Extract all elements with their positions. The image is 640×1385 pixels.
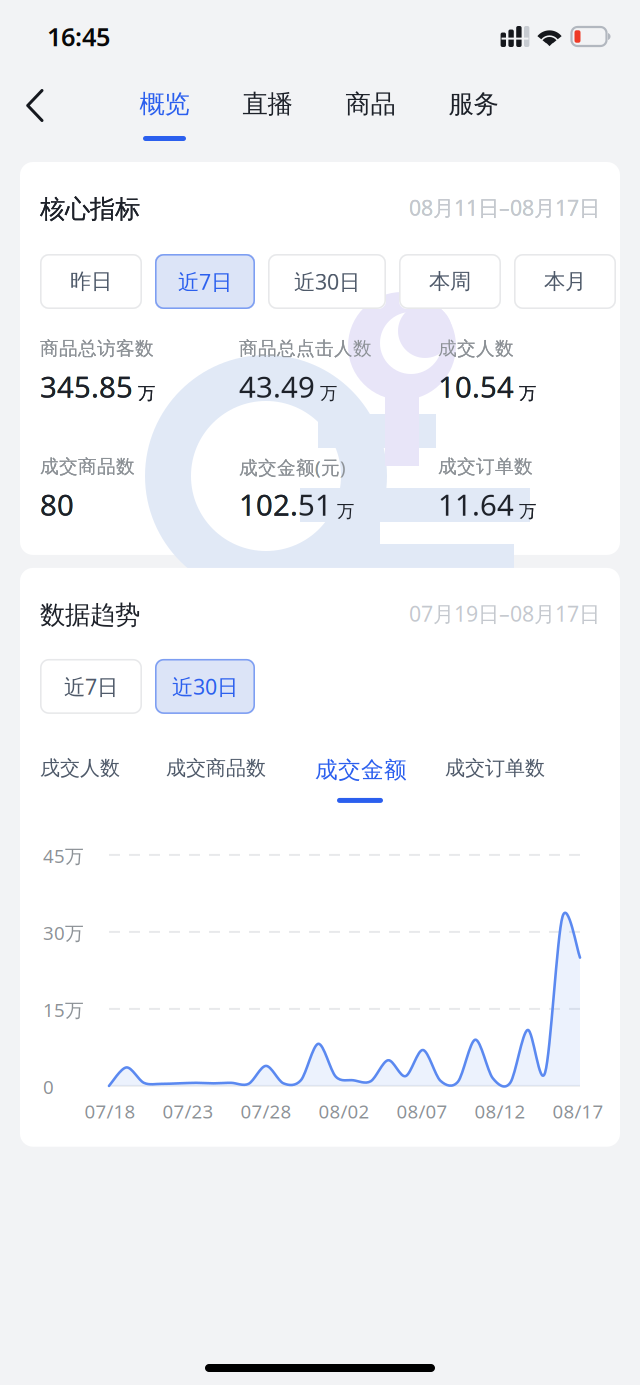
staticText: 102.51 bbox=[239, 485, 332, 524]
button[interactable]: 成交商品数 bbox=[166, 756, 315, 812]
staticText: 概览 bbox=[139, 88, 189, 119]
staticText: 近7日 bbox=[64, 672, 118, 700]
staticText: 商品 bbox=[345, 88, 395, 119]
staticText: 08/02 bbox=[318, 1099, 369, 1124]
button[interactable]: 近30日 bbox=[155, 659, 255, 714]
staticText: 成交金额(元) bbox=[239, 455, 346, 480]
button[interactable]: 直播 bbox=[216, 73, 319, 138]
staticText: 08/12 bbox=[474, 1099, 525, 1124]
button[interactable]: 本周 bbox=[399, 254, 501, 309]
button[interactable]: 商品 bbox=[319, 73, 422, 138]
staticText: 数据趋势 bbox=[40, 599, 140, 631]
button[interactable]: 昨日 bbox=[40, 254, 142, 309]
staticText: 11.64 bbox=[438, 485, 514, 524]
staticText: 07/18 bbox=[84, 1099, 135, 1124]
staticText: 近30日 bbox=[294, 267, 360, 296]
button[interactable]: 本月 bbox=[514, 254, 616, 309]
staticText: 万 bbox=[337, 501, 354, 522]
staticText: 万 bbox=[320, 383, 337, 404]
staticText: 近30日 bbox=[294, 267, 360, 296]
staticText: 43.49 bbox=[239, 367, 315, 406]
staticText: 本周 bbox=[429, 268, 471, 295]
button[interactable]: 成交金额 bbox=[315, 756, 445, 812]
staticText: 08月11日–08月17日 bbox=[409, 193, 600, 222]
staticText: 万 bbox=[519, 383, 536, 404]
staticText: 08/17 bbox=[552, 1099, 603, 1124]
staticText: 80 bbox=[40, 485, 74, 524]
button[interactable]: 概览 bbox=[113, 73, 216, 138]
staticText: 商品总点击人数 bbox=[239, 337, 372, 360]
button[interactable]: 昨日 bbox=[40, 254, 142, 309]
staticText: 本月 bbox=[544, 268, 586, 295]
staticText: 近7日 bbox=[178, 267, 232, 296]
staticText: 10.54 bbox=[438, 367, 514, 406]
staticText: 成交商品数 bbox=[40, 455, 135, 478]
staticText: 成交商品数 bbox=[40, 455, 135, 478]
staticText: 11.64 bbox=[438, 485, 514, 524]
staticText: 近7日 bbox=[178, 267, 232, 296]
button[interactable]: 近7日 bbox=[155, 254, 255, 309]
staticText: 昨日 bbox=[70, 268, 112, 295]
button[interactable]: 本月 bbox=[514, 254, 616, 309]
staticText: 万 bbox=[519, 383, 536, 404]
button[interactable]: 服务 bbox=[422, 73, 525, 138]
staticText: 万 bbox=[337, 501, 354, 522]
staticText: 万 bbox=[320, 383, 337, 404]
staticText: 07月19日–08月17日 bbox=[409, 599, 600, 627]
button[interactable]: 本周 bbox=[399, 254, 501, 309]
staticText: 成交订单数 bbox=[438, 455, 533, 478]
staticText: 成交金额(元) bbox=[239, 455, 346, 480]
staticText: 07/28 bbox=[240, 1099, 291, 1124]
staticText: 07/23 bbox=[162, 1099, 213, 1124]
staticText: 10.54 bbox=[438, 367, 514, 406]
staticText: 商品总访客数 bbox=[40, 337, 154, 360]
staticText: 万 bbox=[519, 501, 536, 522]
staticText: 商品总访客数 bbox=[40, 337, 154, 360]
staticText: 0 bbox=[43, 1074, 54, 1099]
staticText: 万 bbox=[138, 383, 155, 404]
staticText: 15万 bbox=[43, 997, 84, 1022]
staticText: 本周 bbox=[429, 268, 471, 295]
staticText: 商品总点击人数 bbox=[239, 337, 372, 360]
button[interactable]: 戌交人数 bbox=[40, 756, 166, 812]
button[interactable]: 近30日 bbox=[268, 254, 386, 309]
staticText: 45万 bbox=[43, 843, 84, 868]
staticText: 昨日 bbox=[70, 268, 112, 295]
button[interactable]: 成交订单数 bbox=[445, 756, 570, 812]
staticText: 08月11日–08月17日 bbox=[409, 193, 600, 222]
staticText: 成交人数 bbox=[438, 337, 514, 360]
staticText: 成交金额 bbox=[315, 756, 407, 784]
staticText: 345.85 bbox=[40, 367, 133, 406]
button[interactable]: 近7日 bbox=[40, 659, 142, 714]
staticText: 16:45 bbox=[47, 20, 110, 53]
staticText: 本月 bbox=[544, 268, 586, 295]
staticText: 万 bbox=[519, 501, 536, 522]
staticText: 成交订单数 bbox=[438, 455, 533, 478]
staticText: 戌交人数 bbox=[40, 756, 120, 780]
button[interactable]: 近7日 bbox=[155, 254, 255, 309]
staticText: 43.49 bbox=[239, 367, 315, 406]
staticText: 核心指标 bbox=[40, 193, 140, 225]
staticText: 服务 bbox=[448, 88, 498, 119]
staticText: 成交商品数 bbox=[166, 756, 266, 780]
staticText: 80 bbox=[40, 485, 74, 524]
staticText: 30万 bbox=[43, 920, 84, 945]
staticText: 08/07 bbox=[396, 1099, 447, 1124]
staticText: 成交人数 bbox=[438, 337, 514, 360]
staticText: 345.85 bbox=[40, 367, 133, 406]
button[interactable]: 近30日 bbox=[268, 254, 386, 309]
staticText: 直播 bbox=[242, 88, 292, 119]
staticText: 成交订单数 bbox=[445, 756, 545, 780]
staticText: 102.51 bbox=[239, 485, 332, 524]
staticText: 万 bbox=[138, 383, 155, 404]
button[interactable]: Back bbox=[9, 73, 61, 138]
staticText: 近30日 bbox=[172, 672, 238, 700]
staticText: 核心指标 bbox=[40, 193, 140, 225]
